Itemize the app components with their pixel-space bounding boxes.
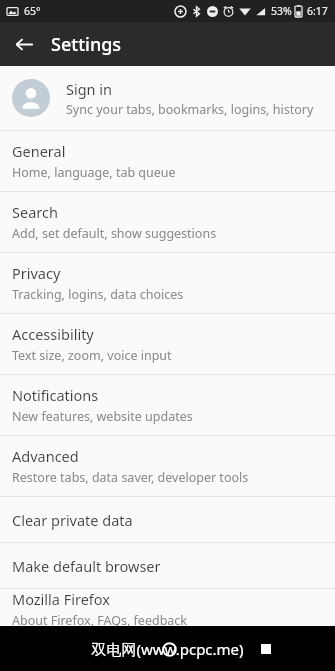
button[interactable]: Sign in [0,66,335,130]
staticText: About Firefox, FAQs, feedback [12,612,188,626]
button[interactable]: Make default browser [0,543,335,588]
button[interactable]: Privacy [0,253,335,313]
button[interactable]: Advanced [0,436,335,496]
staticText: Privacy [12,263,61,283]
staticText: Tracking, logins, data choices [12,286,184,303]
staticText: 65° [24,4,41,18]
staticText: Mozilla Firefox [12,589,111,609]
staticText: Sync your tabs, bookmarks, logins, histo… [66,101,314,118]
button[interactable]: General [0,131,335,191]
staticText: 53% [271,4,292,18]
staticText: Make default browser [12,556,161,576]
button[interactable]: Search [0,192,335,252]
staticText: Clear private data [12,510,133,530]
button[interactable]: Home [155,635,183,663]
staticText: Notifications [12,385,99,405]
staticText: Sign in [66,79,113,99]
staticText: Advanced [12,446,79,466]
staticText: Home, language, tab queue [12,164,176,181]
staticText: Settings [51,32,122,57]
staticText: Text size, zoom, voice input [12,347,172,364]
staticText: Add, set default, show suggestions [12,225,217,242]
staticText: Restore tabs, data saver, developer tool… [12,469,249,486]
button[interactable]: Mozilla Firefox [0,589,335,626]
staticText: 6:17 [307,4,328,18]
button[interactable]: Accessibility [0,314,335,374]
button[interactable]: Back [5,25,43,63]
staticText: General [12,141,66,161]
button[interactable]: Recent apps [252,635,280,663]
staticText: Search [12,202,58,222]
staticText: Accessibility [12,324,94,344]
staticText: 双电网(www.pcpc.me) [91,639,244,659]
staticText: New features, website updates [12,408,193,425]
button[interactable]: Notifications [0,375,335,435]
button[interactable]: Clear private data [0,497,335,542]
